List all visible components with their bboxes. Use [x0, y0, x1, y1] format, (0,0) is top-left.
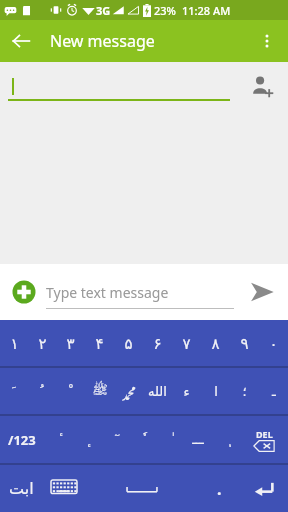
staticText: ۶ [153, 335, 162, 352]
button[interactable]: ۸ [201, 320, 230, 366]
button[interactable]: ۲ [28, 320, 56, 366]
button[interactable]: Send [242, 272, 282, 312]
button[interactable]: ۳ [56, 320, 85, 366]
button[interactable]: ـ [259, 368, 288, 414]
button[interactable]: ﷴ [114, 368, 143, 414]
staticText: ـ [272, 384, 276, 399]
button[interactable]: ٗ [128, 416, 156, 463]
button[interactable] [8, 71, 230, 101]
button[interactable]: More options [246, 20, 288, 62]
staticText: 23% [154, 3, 176, 18]
staticText: New message [50, 30, 155, 52]
button[interactable]: Type text message [46, 275, 234, 309]
button[interactable]: Delete [240, 416, 288, 463]
button[interactable]: ۹ [230, 320, 259, 366]
staticText: ابت [9, 479, 34, 498]
button[interactable]: /123 [0, 416, 44, 463]
staticText: ۳ [66, 335, 75, 352]
button[interactable]: Space [85, 465, 198, 512]
button[interactable]: الله [143, 368, 172, 414]
staticText: ۷ [182, 335, 191, 352]
staticText: ۲ [38, 335, 47, 352]
button[interactable]: Back [0, 20, 42, 62]
staticText: ﹸ [40, 384, 44, 399]
staticText: ؛ [242, 384, 247, 399]
button[interactable]: ٖ [212, 416, 240, 463]
button[interactable]: Enter [240, 465, 288, 512]
button[interactable]: ۶ [143, 320, 172, 366]
staticText: ـــ [192, 432, 204, 447]
staticText: ﹾ [69, 384, 73, 399]
button[interactable]: ؛ [230, 368, 259, 414]
button[interactable]: ۰ [259, 320, 288, 366]
button[interactable]: ﹸ [28, 368, 56, 414]
staticText: DEL [256, 428, 273, 440]
button[interactable]: ۵ [114, 320, 143, 366]
staticText: /123 [8, 431, 36, 449]
staticText: Type text message [46, 283, 169, 302]
button[interactable]: ـــ [184, 416, 212, 463]
button[interactable]: ٕ [72, 416, 100, 463]
staticText: ۰ [269, 335, 278, 352]
staticText: ۴ [95, 335, 104, 352]
staticText: ﷺ [92, 382, 108, 401]
button[interactable]: ابت [0, 465, 43, 512]
button[interactable]: ۴ [85, 320, 114, 366]
staticText: ا [214, 384, 218, 399]
staticText: ﹶ [12, 384, 16, 399]
staticText: ۵ [124, 335, 133, 352]
button[interactable]: Add contact [246, 70, 278, 102]
button[interactable]: ۱ [0, 320, 28, 366]
staticText: الله [148, 384, 167, 399]
button[interactable]: ء [172, 368, 201, 414]
button[interactable]: Add attachment [6, 274, 42, 310]
button[interactable]: ٰ [156, 416, 184, 463]
button[interactable]: ۷ [172, 320, 201, 366]
staticText: ۸ [211, 335, 220, 352]
button[interactable]: Switch keyboard [43, 465, 85, 512]
button[interactable]: . [198, 465, 240, 512]
button[interactable]: ٔ [44, 416, 72, 463]
button[interactable]: ﹶ [0, 368, 28, 414]
staticText: 3G [96, 3, 111, 18]
staticText: 11:28 AM [182, 3, 231, 18]
button[interactable]: ا [201, 368, 230, 414]
button[interactable]: ٓ [100, 416, 128, 463]
staticText: . [217, 478, 222, 500]
button[interactable]: ﷺ [85, 368, 114, 414]
staticText: ۱ [10, 335, 19, 352]
staticText: ۹ [240, 335, 249, 352]
button[interactable]: ﹾ [56, 368, 85, 414]
staticText: ء [183, 384, 190, 399]
staticText: ﷴ [121, 375, 136, 408]
